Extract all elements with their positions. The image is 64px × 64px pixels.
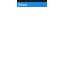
staticText: Inbox xyxy=(18,2,27,7)
